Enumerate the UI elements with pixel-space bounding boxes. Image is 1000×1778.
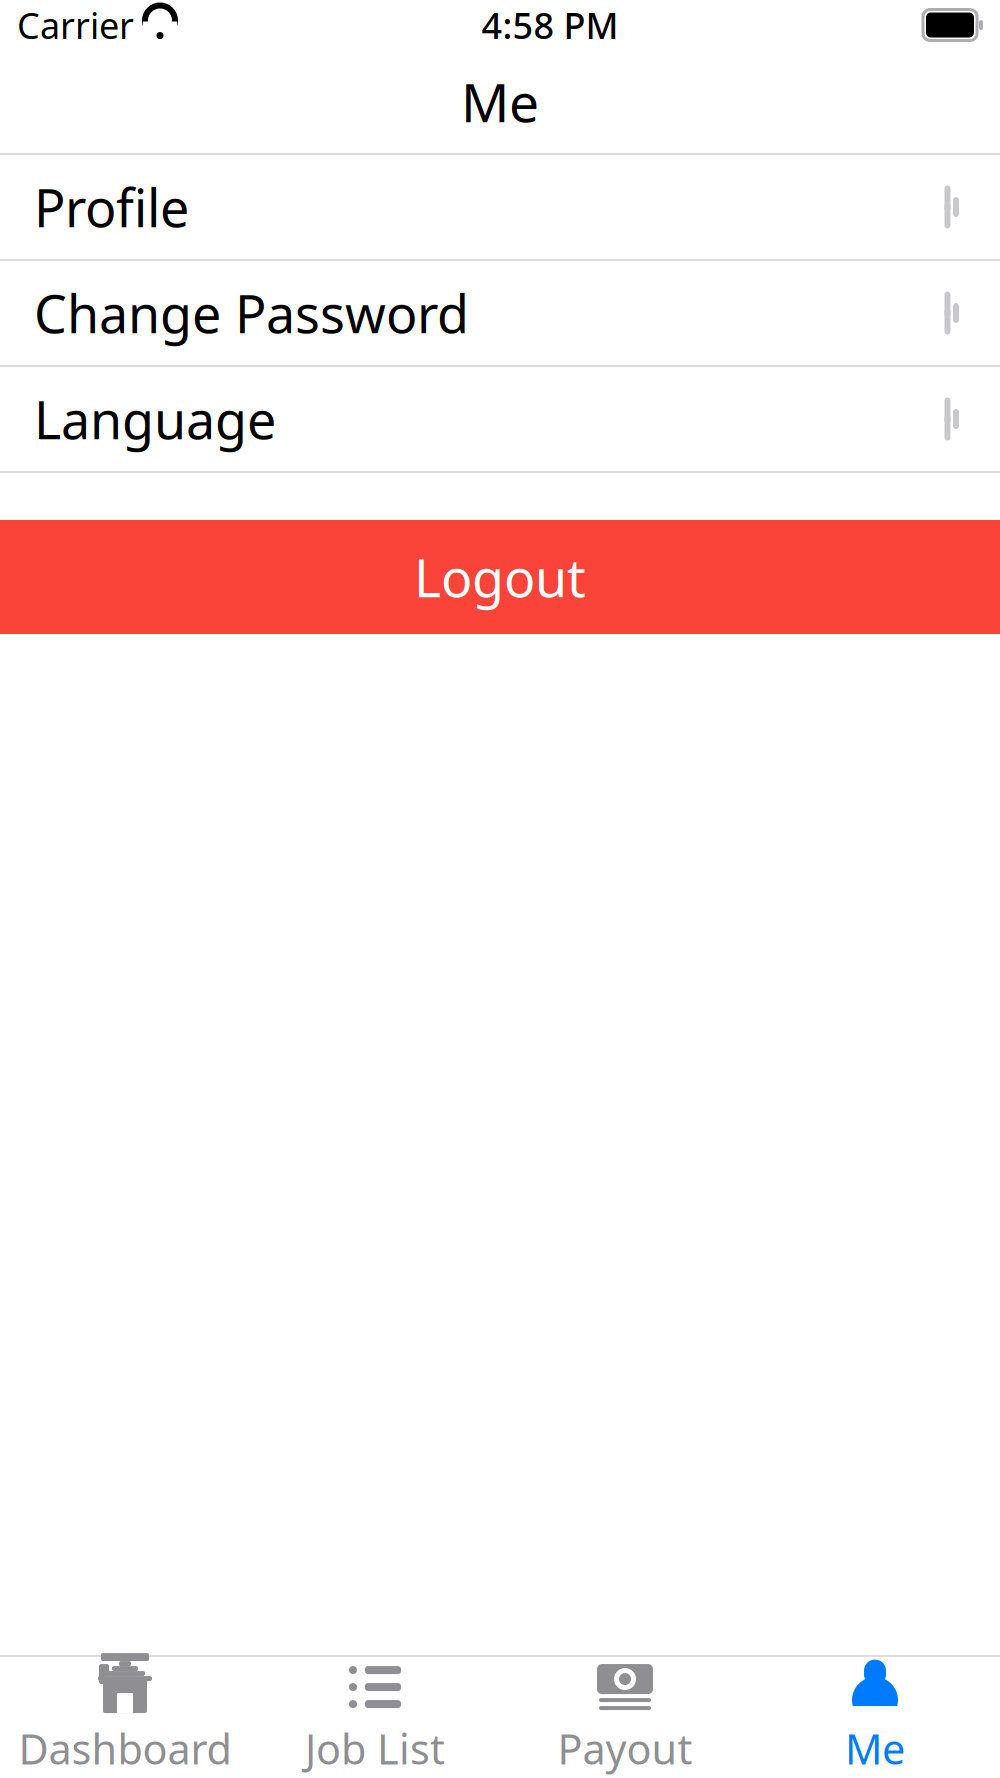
button[interactable]: Logout bbox=[0, 520, 1000, 634]
staticText: Payout bbox=[557, 1721, 692, 1776]
staticText: Me bbox=[461, 66, 539, 137]
staticText: Language bbox=[34, 384, 276, 454]
button[interactable]: Me bbox=[750, 1657, 1000, 1778]
staticText: Change Password bbox=[34, 278, 469, 348]
button[interactable]: Dashboard bbox=[0, 1657, 250, 1778]
staticText: Job List bbox=[305, 1721, 445, 1776]
button[interactable]: Job List bbox=[250, 1657, 500, 1778]
staticText: Me bbox=[845, 1721, 905, 1776]
button[interactable]: Language bbox=[0, 367, 1000, 471]
staticText: Profile bbox=[34, 172, 189, 242]
staticText: Logout bbox=[414, 542, 586, 612]
staticText: Carrier bbox=[17, 1, 134, 49]
staticText: 4:58 PM bbox=[481, 1, 618, 49]
button[interactable]: Payout bbox=[500, 1657, 750, 1778]
button[interactable]: Change Password bbox=[0, 261, 1000, 365]
staticText: Dashboard bbox=[18, 1721, 231, 1776]
button[interactable]: Profile bbox=[0, 155, 1000, 259]
